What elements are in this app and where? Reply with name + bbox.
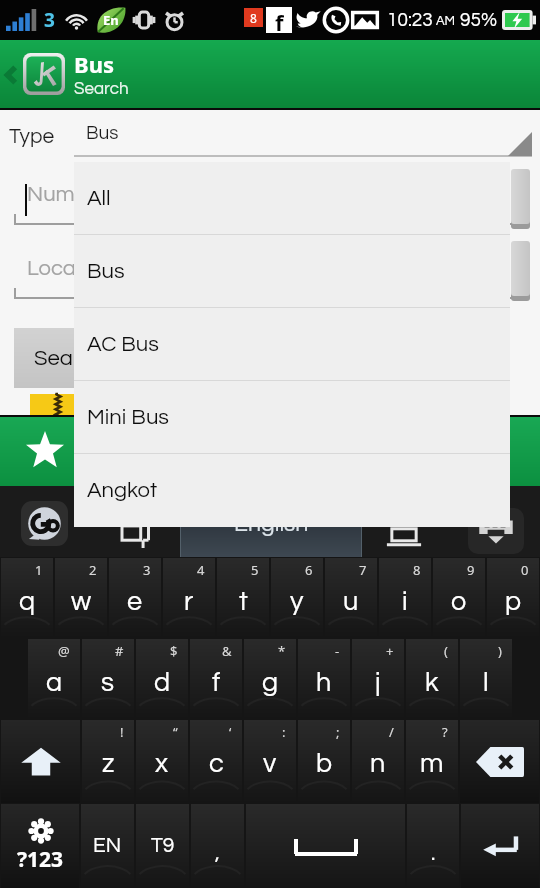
staticText: ( — [444, 642, 448, 660]
button[interactable]: “ — [136, 720, 188, 803]
staticText: 4 — [197, 561, 205, 579]
staticText: English — [234, 512, 309, 536]
staticText: & — [222, 642, 232, 660]
button[interactable]: / — [352, 720, 404, 803]
staticText: w — [71, 588, 92, 616]
button[interactable]: # — [82, 639, 134, 719]
button[interactable]: ? — [406, 720, 458, 803]
staticText: 8 — [413, 561, 421, 579]
button[interactable]: ! — [82, 720, 134, 803]
staticText: ; — [336, 723, 340, 741]
button[interactable]: 4 — [163, 558, 215, 638]
staticText: Bus — [74, 49, 114, 79]
button[interactable]: , — [191, 804, 244, 888]
button[interactable]: Angkot — [74, 454, 510, 527]
staticText: ! — [120, 723, 124, 741]
staticText: x — [155, 750, 169, 778]
staticText: s — [101, 669, 115, 697]
staticText: Type — [9, 126, 55, 148]
staticText: b — [316, 750, 333, 778]
button[interactable]: 2 — [55, 558, 107, 638]
button[interactable]: 9 — [433, 558, 485, 638]
button[interactable]: EN — [81, 804, 134, 888]
button[interactable]: Bus — [74, 235, 510, 308]
button[interactable]: . — [407, 804, 459, 888]
button[interactable]: ( — [406, 639, 458, 719]
button[interactable]: ) — [460, 639, 512, 719]
button[interactable]: 1 — [1, 558, 53, 638]
staticText: 0 — [521, 561, 529, 579]
button[interactable]: Type spinner — [74, 112, 532, 157]
staticText: / — [389, 723, 394, 741]
button[interactable]: Symbols — [1, 804, 79, 888]
button[interactable]: 5 — [217, 558, 269, 638]
button[interactable]: & — [190, 639, 242, 719]
staticText: Mini Bus — [87, 406, 169, 429]
staticText: Search — [74, 80, 129, 98]
button[interactable]: @ — [28, 639, 80, 719]
staticText: f — [275, 7, 284, 33]
button[interactable]: Space — [246, 804, 405, 888]
button[interactable]: 6 — [271, 558, 323, 638]
button[interactable]: $ — [136, 639, 188, 719]
staticText: h — [316, 669, 332, 697]
button[interactable]: : — [244, 720, 296, 803]
staticText: 3 — [44, 7, 55, 33]
button[interactable]: T9 — [136, 804, 189, 888]
button[interactable]: * — [244, 639, 296, 719]
staticText: 9 — [467, 561, 475, 579]
staticText: AM — [436, 14, 456, 27]
button[interactable]: Go — [21, 501, 68, 546]
staticText: - — [335, 642, 340, 660]
button[interactable]: + — [352, 639, 404, 719]
staticText: t — [239, 588, 248, 616]
staticText: f — [212, 669, 221, 697]
button[interactable]: ; — [298, 720, 350, 803]
staticText: : — [282, 723, 286, 741]
staticText: “ — [173, 723, 178, 741]
button[interactable]: 7 — [325, 558, 377, 638]
staticText: p — [505, 588, 522, 616]
button[interactable]: Enter — [461, 804, 539, 888]
staticText: 2 — [89, 561, 97, 579]
staticText: All — [87, 187, 111, 210]
staticText: 5 — [251, 561, 259, 579]
button[interactable]: - — [298, 639, 350, 719]
staticText: q — [19, 588, 36, 616]
button[interactable]: 0 — [487, 558, 539, 638]
button[interactable]: ‘ — [190, 720, 242, 803]
staticText: i — [402, 588, 408, 616]
staticText: u — [343, 588, 359, 616]
staticText: 3 — [143, 561, 151, 579]
staticText: 8 — [250, 10, 257, 26]
staticText: a — [46, 669, 63, 697]
button[interactable]: Backspace — [460, 720, 539, 803]
staticText: T9 — [151, 835, 175, 857]
staticText: z — [102, 750, 115, 778]
staticText: o — [451, 588, 467, 616]
button[interactable]: 3 — [109, 558, 161, 638]
button[interactable]: Hide keyboard — [468, 508, 524, 554]
button[interactable]: Shift — [1, 720, 80, 803]
button[interactable]: Favourite — [0, 417, 540, 486]
button[interactable]: Search — [14, 328, 124, 388]
button[interactable]: AC Bus — [74, 308, 510, 381]
button[interactable]: All — [74, 162, 510, 235]
staticText: 10:23 — [387, 10, 433, 30]
staticText: v — [263, 750, 277, 778]
staticText: m — [420, 750, 444, 778]
staticText: Bus — [86, 123, 119, 143]
staticText: En — [103, 11, 119, 29]
button[interactable]: Back — [0, 40, 22, 110]
staticText: j — [375, 669, 381, 697]
staticText: 95% — [460, 10, 497, 30]
staticText: d — [154, 669, 171, 697]
staticText: 7 — [359, 561, 367, 579]
staticText: # — [115, 642, 124, 660]
staticText: . — [431, 843, 436, 865]
staticText: ) — [498, 642, 502, 660]
button[interactable]: 8 — [379, 558, 431, 638]
button[interactable]: Mini Bus — [74, 381, 510, 454]
staticText: Number — [27, 183, 108, 206]
staticText: Location — [27, 257, 113, 280]
